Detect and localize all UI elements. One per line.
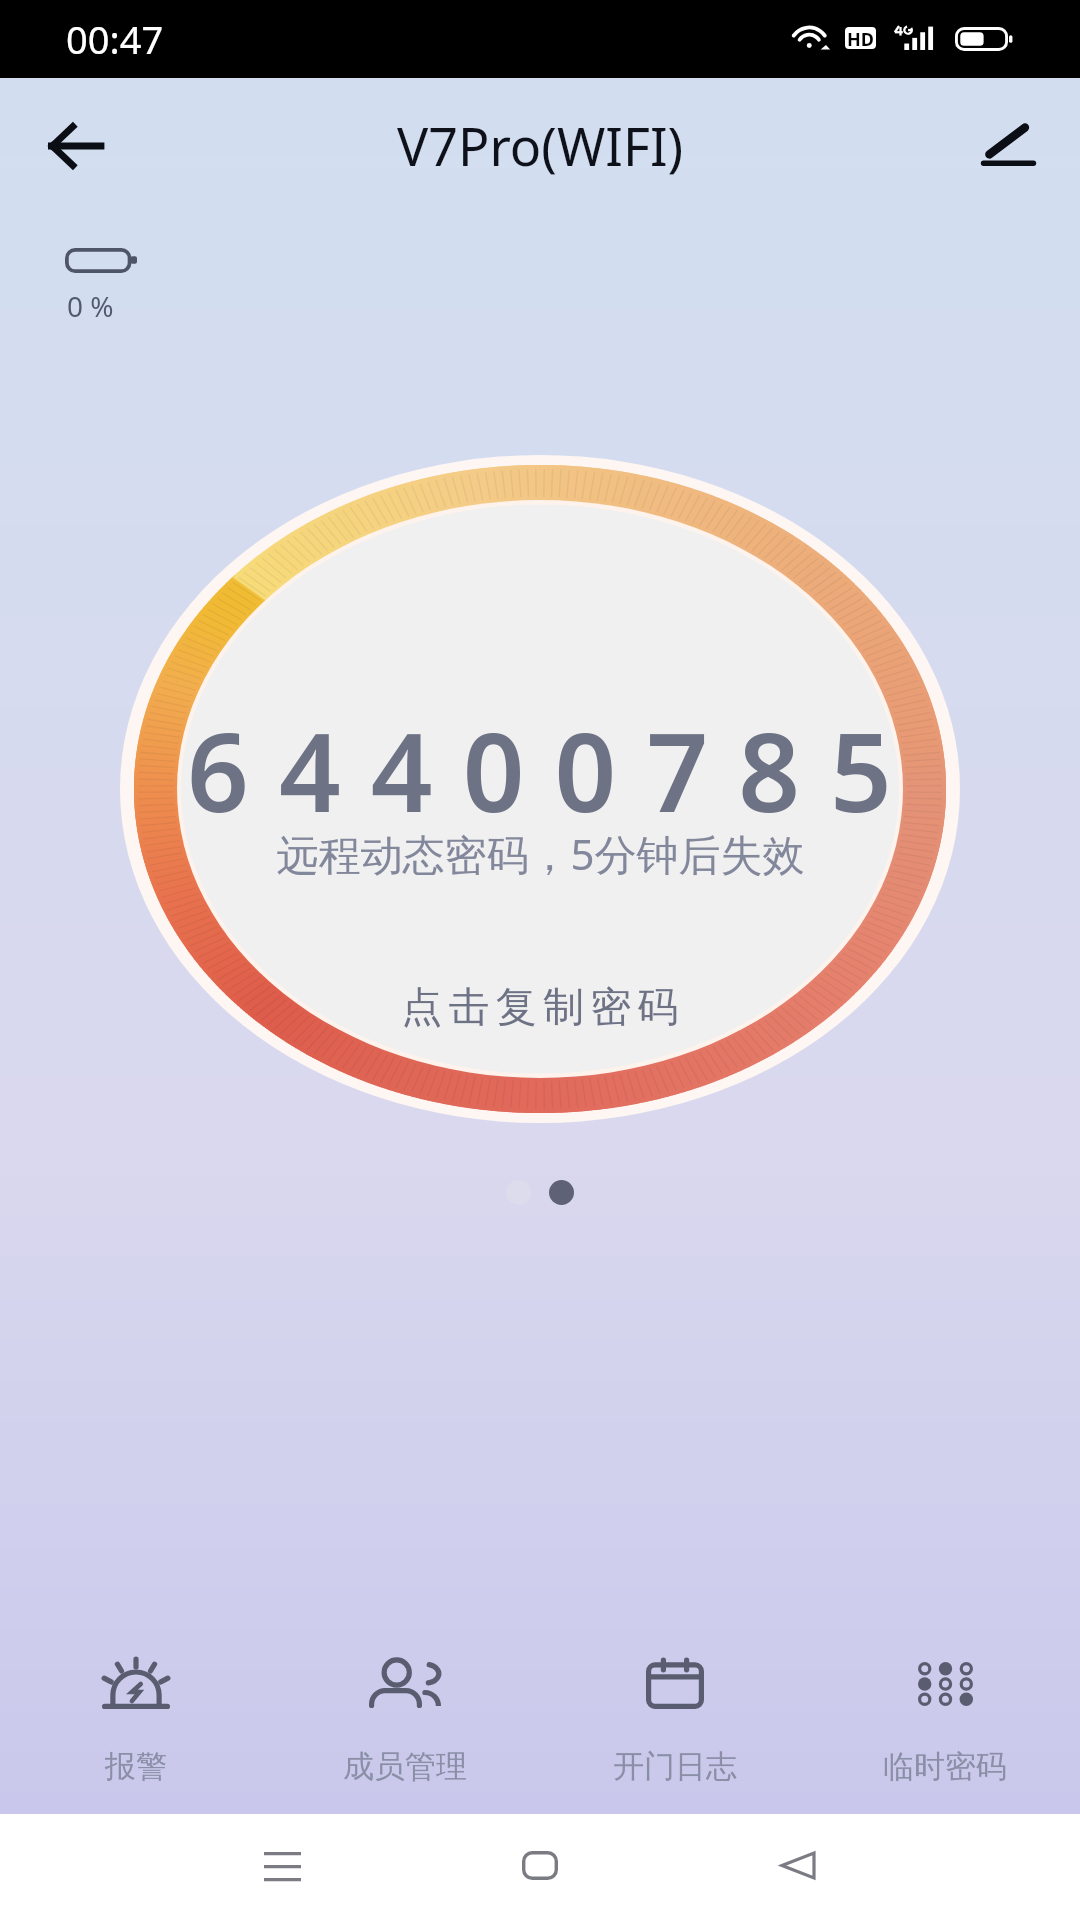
button[interactable]: Back [22,93,128,199]
button[interactable]: 成员管理 [295,1649,515,1786]
staticText: HD [847,27,874,49]
staticText: 报警 [105,1747,167,1786]
button[interactable]: 6 4 4 0 0 7 8 5 [90,429,990,1149]
button[interactable]: Recent apps [208,1814,356,1920]
staticText: 6 4 4 0 0 7 8 5 [187,697,893,844]
staticText: 0 % [67,287,114,325]
button[interactable]: 临时密码 [835,1649,1055,1786]
button[interactable]: Home [466,1814,614,1920]
staticText: 成员管理 [343,1747,467,1786]
staticText: 临时密码 [883,1747,1007,1786]
staticText: 00:47 [66,13,164,65]
button[interactable]: 报警 [26,1649,246,1786]
staticText: 远程动态密码，5分钟后失效 [276,825,805,882]
button[interactable]: Back [724,1814,872,1920]
staticText: V7Pro(WIFI) [397,110,684,181]
staticText: 开门日志 [613,1747,737,1786]
button[interactable]: Edit name [982,125,1035,167]
button[interactable]: 开门日志 [565,1649,785,1786]
staticText: 点击复制密码 [401,982,685,1034]
